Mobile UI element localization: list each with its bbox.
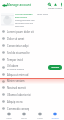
- button[interactable]: Ullamco laboris nisi: [2, 91, 62, 98]
- staticText: Google Account: [48, 7, 63, 10]
- button[interactable]: More options: [59, 2, 63, 6]
- staticText: Manage account: [7, 3, 31, 7]
- button[interactable]: Saved: [33, 112, 47, 120]
- button[interactable]: Upgrade: [48, 65, 62, 70]
- button[interactable]: Search: [17, 112, 31, 120]
- button[interactable]: Account: [48, 112, 62, 120]
- button[interactable]: Learn more: [37, 13, 48, 16]
- button[interactable]: Nostrud exercit: [2, 84, 62, 91]
- staticText: Account settings and privacy: [15, 13, 35, 19]
- staticText: Ullamco laboris nisi: [7, 93, 31, 97]
- button[interactable]: Consectetur adipi: [2, 42, 62, 49]
- staticText: Tempor incid: [7, 58, 23, 62]
- staticText: Home: [6, 117, 12, 120]
- button[interactable]: Back: [1, 2, 7, 8]
- button[interactable]: Alerts: [53, 2, 57, 6]
- button[interactable]: Aliquip ex ea: [2, 98, 62, 105]
- button[interactable]: Lorem ipsum dolor sit: [2, 28, 62, 35]
- staticText: Lorem ipsum dolor sit: [7, 30, 34, 34]
- button[interactable]: Minim veniam: [2, 78, 62, 84]
- button[interactable]: Commodo conseq: [2, 105, 62, 112]
- staticText: Ut labore: [7, 64, 19, 68]
- staticText: Search: [21, 117, 27, 120]
- button[interactable]: Account settings and privacy: [1, 11, 64, 28]
- button[interactable]: Ut labore: [2, 63, 62, 71]
- staticText: et dolore magna: [7, 68, 25, 71]
- staticText: Account: [51, 117, 59, 120]
- staticText: Secondary info line here now: [15, 22, 35, 27]
- button[interactable]: Search: [47, 2, 51, 6]
- staticText: Nostrud exercit: [7, 86, 26, 90]
- staticText: Upgrade: [51, 66, 60, 69]
- button[interactable]: Tempor incid: [2, 56, 62, 63]
- staticText: name@example.com: [15, 19, 35, 22]
- button[interactable]: Home: [2, 112, 16, 120]
- staticText: Minim veniam: [7, 79, 25, 83]
- staticText: Aliquip ex ea: [7, 100, 23, 104]
- staticText: Sed do eiusmod te: [7, 51, 30, 55]
- staticText: Aliqua ut enim ad: [7, 73, 29, 77]
- staticText: Saved: [37, 117, 43, 120]
- button[interactable]: Aliqua ut enim ad: [2, 71, 62, 78]
- staticText: Commodo conseq: [7, 107, 30, 111]
- button[interactable]: Dolor sit amet: [2, 35, 62, 42]
- staticText: Dolor sit amet: [7, 37, 25, 41]
- staticText: Consectetur adipi: [7, 44, 29, 48]
- button[interactable]: Sed do eiusmod te: [2, 49, 62, 56]
